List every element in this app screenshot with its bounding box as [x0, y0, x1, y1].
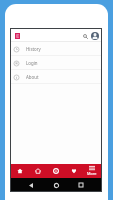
- staticText: More: [87, 171, 97, 176]
- button[interactable]: Search: [47, 164, 65, 178]
- button[interactable]: Account: [90, 31, 99, 40]
- button[interactable]: Home: [11, 164, 29, 178]
- button[interactable]: More: [83, 164, 101, 178]
- staticText: Login: [26, 60, 38, 66]
- button[interactable]: Back: [26, 180, 36, 190]
- staticText: History: [26, 46, 41, 52]
- staticText: About: [26, 74, 39, 80]
- button[interactable]: Login: [11, 56, 101, 70]
- button[interactable]: History: [11, 42, 101, 56]
- button[interactable]: Favourites: [65, 164, 83, 178]
- button[interactable]: App logo: [13, 31, 22, 40]
- button[interactable]: About: [11, 70, 101, 84]
- button[interactable]: Places: [29, 164, 47, 178]
- button[interactable]: Search: [81, 32, 89, 40]
- button[interactable]: Home: [51, 180, 61, 190]
- button[interactable]: Recent apps: [76, 180, 86, 190]
